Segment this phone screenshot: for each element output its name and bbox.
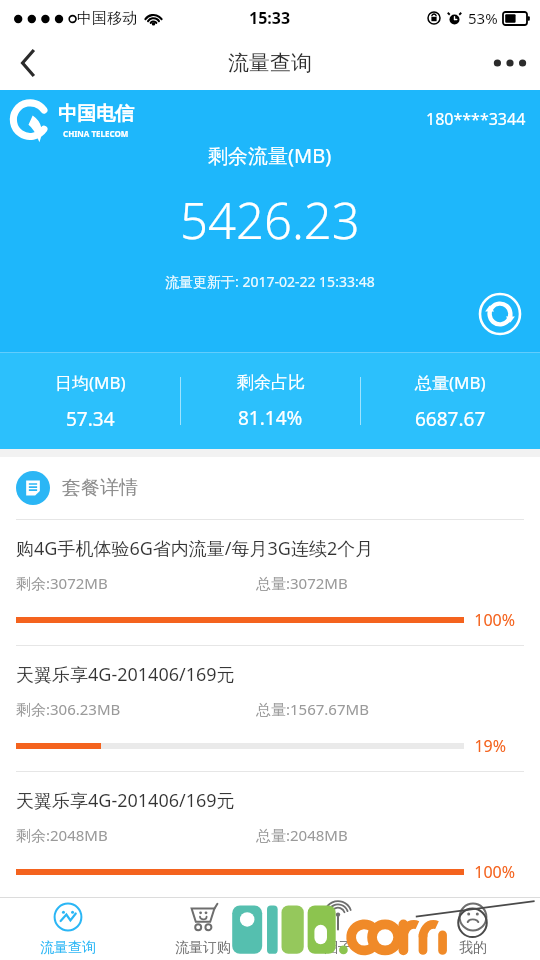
staticText: 中国移动 — [77, 9, 137, 28]
staticText: 5426.23 — [180, 187, 360, 254]
staticText: 剩余占比 — [237, 372, 305, 393]
staticText: 流量订购 — [175, 939, 231, 957]
button[interactable]: 日均(MB) — [0, 353, 180, 449]
staticText: 总量(MB) — [415, 371, 486, 394]
button[interactable]: More options — [480, 36, 540, 90]
staticText: 我的 — [459, 939, 487, 957]
staticText: 天翼乐享4G-201406/169元 — [16, 788, 235, 813]
staticText: 日均(MB) — [55, 371, 126, 394]
staticText: 53% — [468, 8, 498, 28]
staticText: 购4G手机体验6G省内流量/每月3G连续2个月 — [16, 536, 374, 561]
staticText: 57.34 — [66, 406, 115, 432]
staticText: 19% — [474, 735, 506, 757]
button[interactable]: 圈子 — [270, 898, 405, 960]
staticText: 圈子 — [324, 939, 352, 957]
staticText: 15:33 — [249, 7, 291, 29]
staticText: 6687.67 — [415, 406, 486, 432]
button[interactable]: 总量(MB) — [361, 353, 540, 449]
staticText: 剩余:306.23MB — [16, 699, 121, 719]
button[interactable]: 我的 — [405, 898, 540, 960]
button[interactable]: 流量订购 — [135, 898, 270, 960]
staticText: CHINA TELECOM — [63, 128, 129, 139]
staticText: 剩余流量(MB) — [208, 142, 332, 169]
button[interactable]: 天翼乐享4G-201406/169元 — [0, 772, 540, 897]
staticText: 总量:2048MB — [256, 825, 348, 845]
staticText: 中国电信 — [58, 102, 134, 126]
staticText: 流量查询 — [40, 939, 96, 957]
button[interactable]: 流量查询 — [0, 898, 135, 960]
button[interactable]: 剩余占比 — [181, 353, 360, 449]
staticText: 180****3344 — [426, 108, 526, 130]
staticText: 81.14% — [238, 405, 303, 431]
button[interactable]: Back — [0, 36, 56, 90]
button[interactable]: 套餐详情 — [0, 457, 540, 519]
staticText: 流量更新于: 2017-02-22 15:33:48 — [165, 272, 375, 291]
staticText: 套餐详情 — [62, 476, 138, 500]
staticText: 100% — [474, 609, 515, 631]
staticText: 流量查询 — [228, 50, 312, 76]
staticText: 剩余:2048MB — [16, 825, 108, 845]
staticText: 总量:1567.67MB — [256, 699, 369, 719]
button[interactable]: Refresh — [478, 292, 522, 336]
staticText: 100% — [474, 861, 515, 883]
staticText: 总量:3072MB — [256, 573, 348, 593]
staticText: 剩余:3072MB — [16, 573, 108, 593]
button[interactable]: 购4G手机体验6G省内流量/每月3G连续2个月 — [0, 520, 540, 645]
button[interactable]: 天翼乐享4G-201406/169元 — [0, 646, 540, 771]
staticText: 天翼乐享4G-201406/169元 — [16, 662, 235, 687]
